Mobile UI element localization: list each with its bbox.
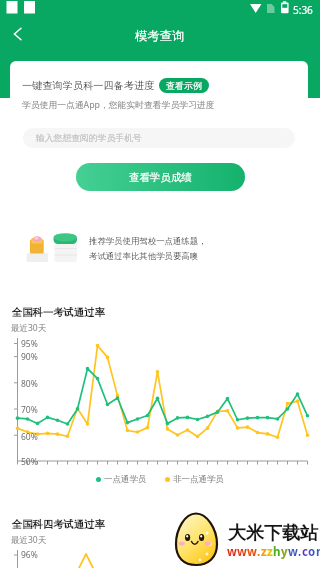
staticText: 60% [21,431,38,443]
button[interactable] [10,218,308,287]
staticText: 模考查询 [135,28,185,43]
staticText: 推荐学员使用驾校一点通练题， [89,236,207,247]
staticText: 查看示例 [166,80,202,91]
staticText: w [237,544,247,560]
staticText: 95% [21,338,38,350]
staticText: w [247,544,257,560]
staticText: 一点通学员 [104,474,147,485]
staticText: 非一点通学员 [173,474,224,485]
staticText: z [261,544,267,560]
button[interactable]: Back [0,20,38,58]
staticText: 考试通过率比其他学员要高噢 [89,251,199,262]
staticText: 96% [21,549,38,561]
staticText: w [288,544,298,560]
staticText: o [308,544,316,560]
staticText: 最近30天 [11,534,47,546]
staticText: 大米下载站 [228,522,318,545]
staticText: 全国科四考试通过率 [12,518,105,531]
staticText: 学员使用一点通App，您能实时查看学员学习进度 [22,99,215,111]
button[interactable]: 查看学员成绩 [76,163,245,191]
staticText: 输入您想查阅的学员手机号 [36,133,142,144]
staticText: 一键查询学员科一四备考进度 [22,79,155,92]
staticText: . [298,544,302,560]
staticText: c [302,544,308,560]
staticText: y [281,544,288,560]
button[interactable]: 输入您想查阅的学员手机号 [23,128,295,148]
button[interactable]: 查看示例 [159,78,209,93]
staticText: 全国科一考试通过率 [12,306,105,319]
staticText: 查看学员成绩 [129,171,192,184]
staticText: 80% [21,378,38,390]
staticText: 70% [21,404,38,416]
staticText: 5:36 [293,3,313,17]
staticText: z [267,544,273,560]
staticText: h [273,544,281,560]
staticText: m [316,544,320,560]
staticText: 90% [21,351,38,363]
staticText: . [257,544,261,560]
staticText: 50% [21,456,38,468]
staticText: 最近30天 [11,322,47,334]
staticText: w [227,544,237,560]
